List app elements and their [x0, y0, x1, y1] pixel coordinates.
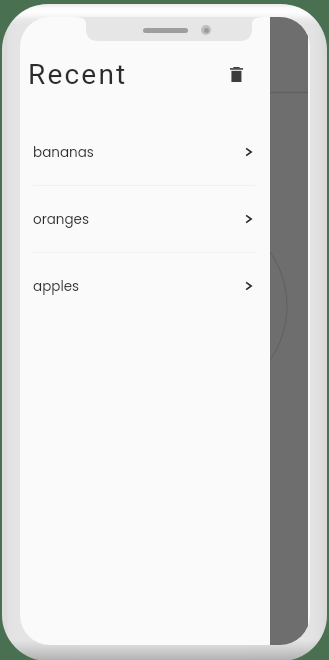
button[interactable]: bananas	[20, 119, 270, 186]
staticText: Recent	[28, 58, 128, 91]
staticText: bananas	[33, 143, 94, 162]
button[interactable]: Delete	[221, 59, 252, 90]
staticText: oranges	[33, 210, 89, 229]
button[interactable]: oranges	[20, 186, 270, 253]
button[interactable]: apples	[20, 253, 270, 319]
staticText: apples	[33, 277, 80, 296]
